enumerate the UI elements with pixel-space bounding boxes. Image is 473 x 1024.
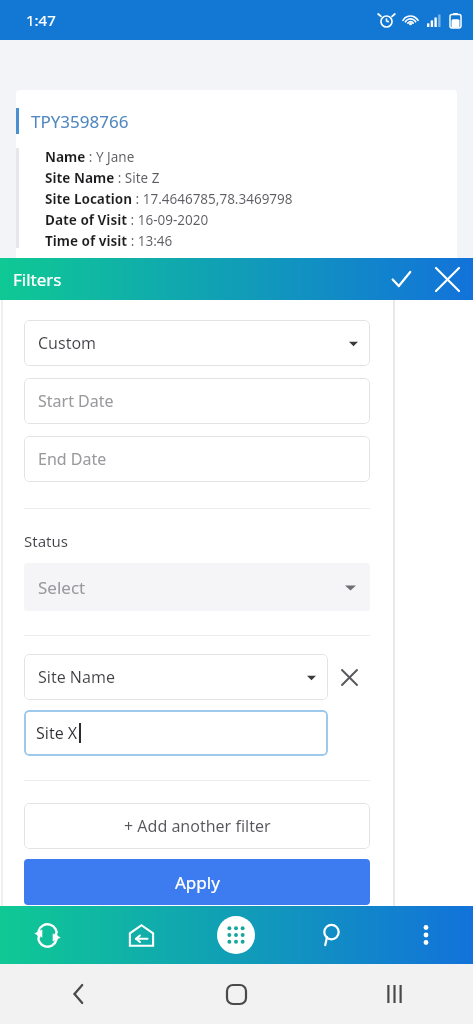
button[interactable]: Confirm filters bbox=[385, 263, 417, 295]
staticText: TPY3598766 bbox=[31, 110, 129, 133]
staticText: Status bbox=[24, 531, 68, 551]
staticText: Start Date bbox=[38, 390, 370, 412]
staticText: Site X bbox=[36, 722, 78, 744]
staticText: Date of Visit : 16-09-2020 bbox=[45, 211, 209, 229]
staticText: Apply bbox=[175, 871, 220, 894]
staticText: + Add another filter bbox=[124, 815, 271, 837]
button[interactable]: Search bbox=[283, 906, 378, 964]
staticText: Site Name : Site Z bbox=[45, 169, 160, 187]
staticText: Select bbox=[38, 576, 86, 599]
staticText: Custom bbox=[38, 332, 97, 354]
button[interactable]: End Date bbox=[24, 436, 370, 482]
button[interactable]: Apps bbox=[188, 906, 283, 964]
button[interactable]: Refresh bbox=[0, 906, 94, 964]
button[interactable]: Select bbox=[24, 563, 370, 611]
button[interactable]: Close filters bbox=[431, 263, 463, 295]
staticText: Site Location : 17.4646785,78.3469798 bbox=[45, 190, 293, 208]
button[interactable]: Custom bbox=[24, 320, 370, 366]
button[interactable]: TPY3598766 bbox=[16, 90, 457, 290]
button[interactable]: Recents bbox=[315, 964, 473, 1024]
button[interactable]: Apply bbox=[24, 859, 370, 905]
staticText: 1:47 bbox=[26, 10, 56, 30]
button[interactable]: Site Name bbox=[24, 654, 328, 700]
staticText: Filters bbox=[13, 268, 62, 291]
staticText: Name : Y Jane bbox=[45, 148, 135, 166]
button[interactable]: + Add another filter bbox=[24, 803, 370, 849]
button[interactable]: Home bbox=[157, 964, 315, 1024]
button[interactable]: Site X bbox=[24, 710, 328, 756]
button[interactable]: More options bbox=[378, 906, 473, 964]
staticText: Time of visit : 13:46 bbox=[45, 232, 173, 250]
button[interactable]: Back bbox=[0, 964, 157, 1024]
staticText: End Date bbox=[38, 448, 370, 470]
button[interactable]: Remove filter bbox=[328, 656, 370, 698]
button[interactable]: Start Date bbox=[24, 378, 370, 424]
staticText: Site Name bbox=[38, 666, 115, 688]
button[interactable]: Home bbox=[94, 906, 188, 964]
